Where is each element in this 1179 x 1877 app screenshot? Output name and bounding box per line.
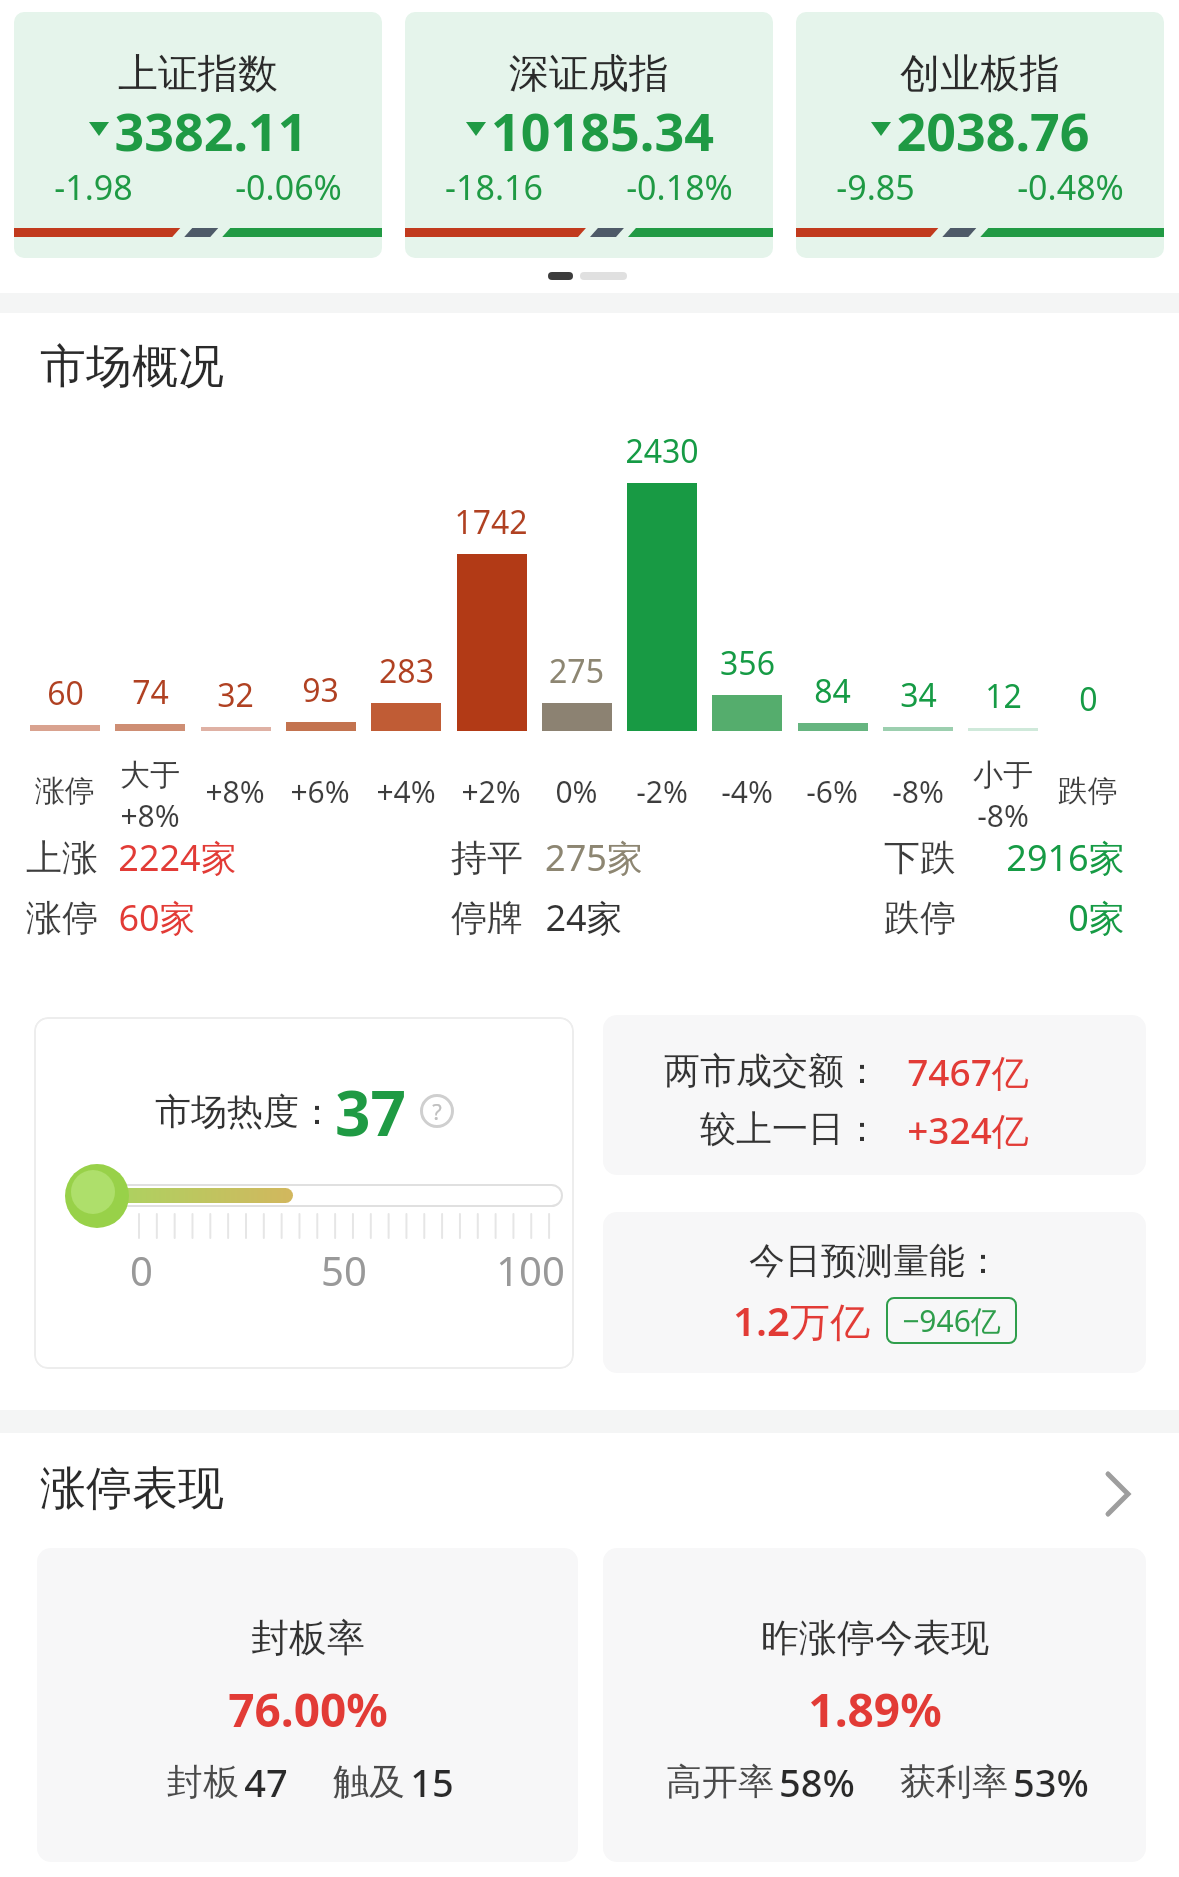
staticText: ? xyxy=(432,1096,442,1126)
staticText: 12 xyxy=(985,674,1022,718)
button[interactable]: 昨涨停今表现 xyxy=(603,1548,1146,1862)
staticText: -6% xyxy=(806,771,858,812)
staticText: 大于 +8% xyxy=(120,756,180,836)
button[interactable]: 封板率 xyxy=(37,1548,578,1862)
button[interactable]: 创业板指 xyxy=(796,12,1164,258)
staticText: 34 xyxy=(900,673,937,717)
staticText: -0.18% xyxy=(626,164,733,210)
staticText: 高开率 xyxy=(661,1756,779,1804)
staticText: 74 xyxy=(132,670,169,714)
staticText: 47 xyxy=(244,1756,288,1804)
staticText: 涨停 xyxy=(35,772,95,810)
staticText: 持平 xyxy=(451,835,523,880)
button[interactable]: 上证指数 xyxy=(14,12,382,258)
staticText: -0.06% xyxy=(235,164,342,210)
staticText: 7467亿 xyxy=(907,1046,1029,1094)
button[interactable]: 两市成交额： xyxy=(603,1015,1146,1175)
staticText: 涨停 xyxy=(26,895,98,940)
staticText: -4% xyxy=(721,771,773,812)
staticText: 上证指数 xyxy=(118,48,278,98)
staticText: 58% xyxy=(779,1756,855,1804)
staticText: 市场热度： xyxy=(155,1089,335,1134)
staticText: 今日预测量能： xyxy=(749,1238,1001,1283)
staticText: 小于 -8% xyxy=(973,756,1033,836)
staticText: -0.48% xyxy=(1017,164,1124,210)
staticText: 上涨 xyxy=(26,835,98,880)
staticText: 356 xyxy=(720,641,775,685)
staticText: 2038.76 xyxy=(896,95,1090,161)
button[interactable]: 深证成指 xyxy=(405,12,773,258)
staticText: 1.2万亿 xyxy=(733,1293,870,1348)
staticText: +4% xyxy=(376,771,436,812)
staticText: 昨涨停今表现 xyxy=(761,1614,989,1662)
staticText: 2430 xyxy=(625,429,699,473)
staticText: 37 xyxy=(335,1070,406,1152)
staticText: 下跌 xyxy=(884,835,956,880)
staticText: 15 xyxy=(410,1756,454,1804)
staticText: 2224家 xyxy=(118,833,237,882)
button[interactable]: 今日预测量能： xyxy=(603,1212,1146,1373)
staticText: 50 xyxy=(321,1243,367,1297)
staticText: 32 xyxy=(217,673,254,717)
staticText: 获利率 xyxy=(895,1756,1013,1804)
staticText: 跌停 xyxy=(1058,772,1118,810)
staticText: +6% xyxy=(290,771,350,812)
staticText: 涨停表现 xyxy=(40,1460,224,1518)
button[interactable]: 市场热度： xyxy=(34,1017,574,1369)
staticText: 53% xyxy=(1013,1756,1089,1804)
staticText: 创业板指 xyxy=(900,48,1060,98)
staticText: +324亿 xyxy=(907,1104,1029,1152)
staticText: 100 xyxy=(496,1243,565,1297)
staticText: 0 xyxy=(130,1243,153,1297)
staticText: 深证成指 xyxy=(509,48,669,98)
staticText: 封板 xyxy=(162,1756,244,1804)
staticText: +2% xyxy=(461,771,521,812)
staticText: 停牌 xyxy=(451,895,523,940)
staticText: -9.85 xyxy=(836,164,915,210)
staticText: 市场概况 xyxy=(40,338,224,396)
staticText: -1.98 xyxy=(54,164,133,210)
staticText: 275 xyxy=(549,649,604,693)
staticText: 60家 xyxy=(118,893,196,942)
staticText: 2916家 xyxy=(1006,833,1125,882)
staticText: 较上一日： xyxy=(700,1106,880,1151)
staticText: +8% xyxy=(205,771,265,812)
staticText: 283 xyxy=(379,649,434,693)
staticText: 275家 xyxy=(545,833,643,882)
staticText: −946亿 xyxy=(902,1300,1001,1341)
staticText: 1742 xyxy=(454,500,528,544)
staticText: 60 xyxy=(47,671,84,715)
staticText: 1.89% xyxy=(808,1678,942,1740)
staticText: 10185.34 xyxy=(491,95,714,161)
staticText: 24家 xyxy=(545,893,623,942)
staticText: 触及 xyxy=(328,1756,410,1804)
button[interactable] xyxy=(1094,1466,1144,1522)
staticText: -2% xyxy=(636,771,688,812)
staticText: 93 xyxy=(302,668,339,712)
staticText: -18.16 xyxy=(445,164,543,210)
staticText: 3382.11 xyxy=(114,95,308,161)
staticText: 两市成交额： xyxy=(664,1048,880,1093)
staticText: 76.00% xyxy=(228,1678,388,1740)
staticText: 封板率 xyxy=(251,1614,365,1662)
staticText: -8% xyxy=(892,771,944,812)
staticText: 0% xyxy=(555,771,598,812)
staticText: 0 xyxy=(1079,677,1098,721)
staticText: 84 xyxy=(814,669,851,713)
staticText: 跌停 xyxy=(884,895,956,940)
staticText: 0家 xyxy=(1068,893,1125,942)
